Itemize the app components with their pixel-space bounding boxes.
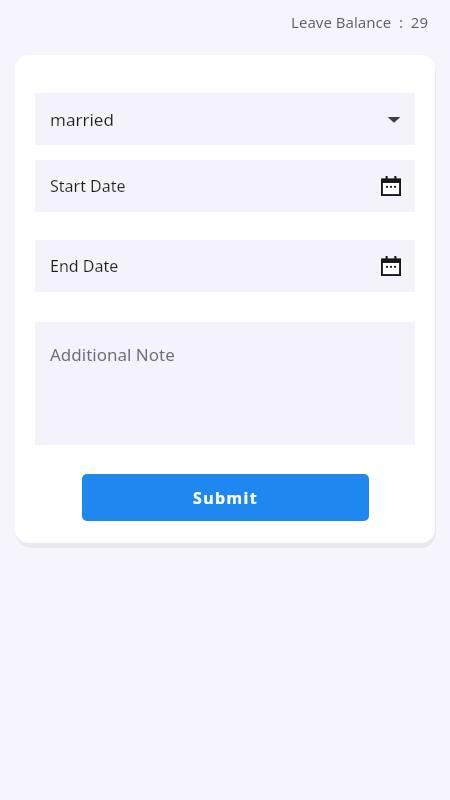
staticText: End Date — [50, 255, 119, 277]
button[interactable]: Submit — [82, 474, 369, 521]
staticText: married — [50, 108, 114, 131]
staticText: Additional Note — [50, 343, 175, 366]
button[interactable]: married — [35, 93, 415, 145]
button[interactable]: Start Date — [35, 160, 415, 212]
button[interactable]: Pick End Date — [380, 255, 402, 277]
button[interactable]: End Date — [35, 240, 415, 292]
button[interactable]: Pick Start Date — [380, 175, 402, 197]
staticText: Start Date — [50, 175, 126, 197]
staticText: Leave Balance : 29 — [258, 12, 428, 32]
staticText: Submit — [193, 487, 259, 509]
button[interactable]: Additional Note — [35, 322, 415, 445]
